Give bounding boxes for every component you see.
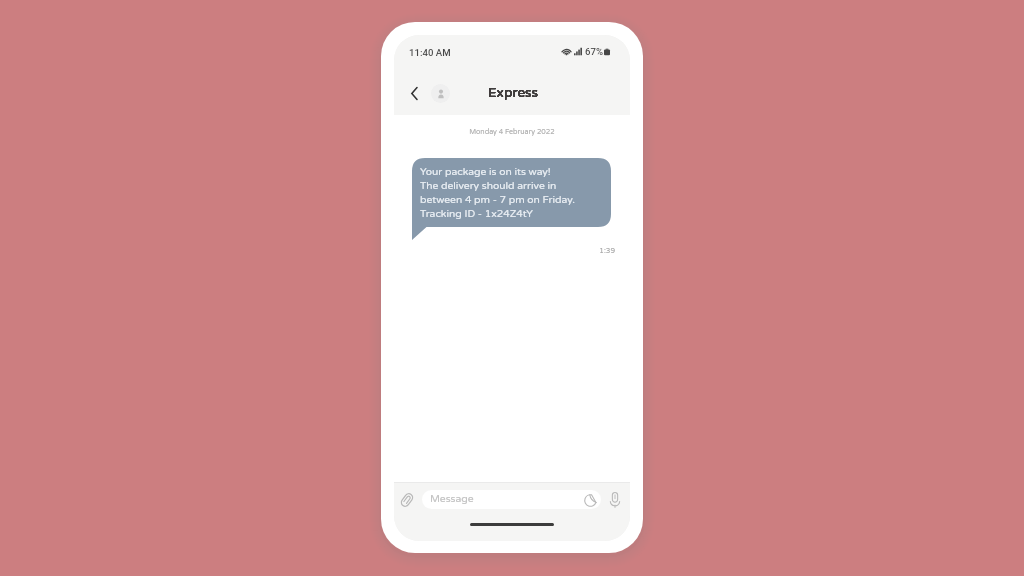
button[interactable]: Contact photo	[431, 84, 450, 103]
button[interactable]: Your package is on its way!	[412, 158, 611, 240]
button[interactable]: Attach file	[397, 490, 417, 510]
button[interactable]: Stickers	[583, 493, 597, 507]
staticText: Express	[488, 85, 539, 101]
staticText: The delivery should arrive in	[420, 180, 557, 194]
staticText: Monday 4 February 2022	[394, 127, 630, 136]
staticText: Express	[488, 85, 539, 101]
staticText: Express	[488, 85, 539, 101]
staticText: 1:39	[394, 246, 615, 255]
staticText: 11:40 AM	[409, 47, 451, 58]
staticText: Message	[430, 493, 474, 505]
staticText: Tracking ID - 1x24Z4tY	[420, 208, 533, 220]
button[interactable]: Voice message	[606, 489, 624, 511]
button[interactable]: Message	[422, 490, 601, 509]
staticText: Express	[488, 85, 539, 101]
staticText: Your package is on its way!	[420, 166, 551, 180]
staticText: Express	[488, 85, 539, 101]
button[interactable]: Back	[403, 82, 426, 105]
staticText: Express	[488, 85, 539, 101]
staticText: between 4 pm - 7 pm on Friday.	[420, 194, 575, 208]
staticText: 67%	[585, 46, 603, 57]
staticText: Express	[488, 85, 539, 101]
staticText: Express	[488, 85, 539, 101]
staticText: Express	[488, 85, 539, 101]
